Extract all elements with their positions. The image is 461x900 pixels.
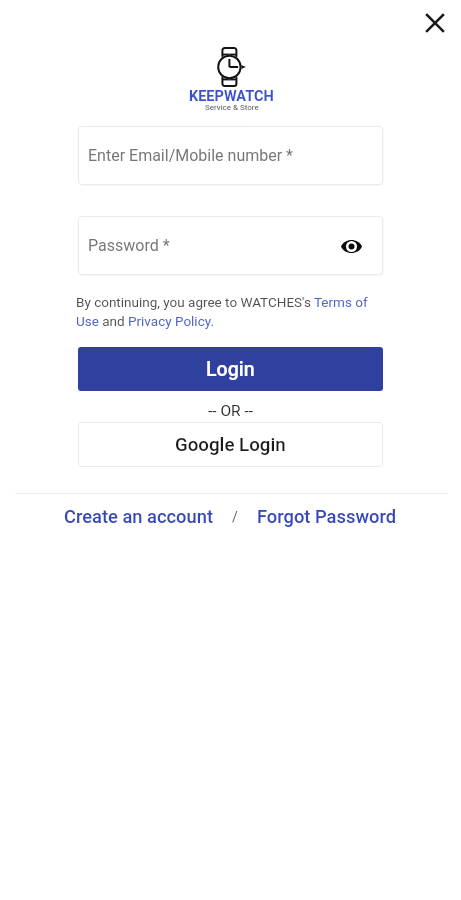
button[interactable]: Create an account	[62, 503, 215, 530]
button[interactable]: Close	[413, 1, 457, 45]
staticText: Password *	[88, 236, 170, 255]
staticText: By continuing, you agree to WATCHES's Te…	[76, 294, 385, 330]
button[interactable]: Enter Email/Mobile number *	[78, 126, 383, 185]
staticText: Service & Store	[205, 103, 259, 112]
staticText: -- OR --	[208, 402, 254, 420]
staticText: Forgot Password	[257, 506, 397, 527]
button[interactable]: Login	[78, 347, 383, 391]
staticText: Create an account	[64, 506, 213, 527]
staticText: KEEPWATCH	[189, 88, 274, 105]
staticText: Login	[206, 358, 255, 381]
button[interactable]: Forgot Password	[255, 503, 399, 530]
button[interactable]: Show password	[338, 233, 364, 259]
staticText: /	[232, 509, 238, 525]
staticText: Enter Email/Mobile number *	[88, 146, 293, 165]
button[interactable]: Google Login	[78, 422, 383, 467]
button[interactable]: Password *	[78, 216, 383, 275]
staticText: Google Login	[175, 434, 286, 456]
